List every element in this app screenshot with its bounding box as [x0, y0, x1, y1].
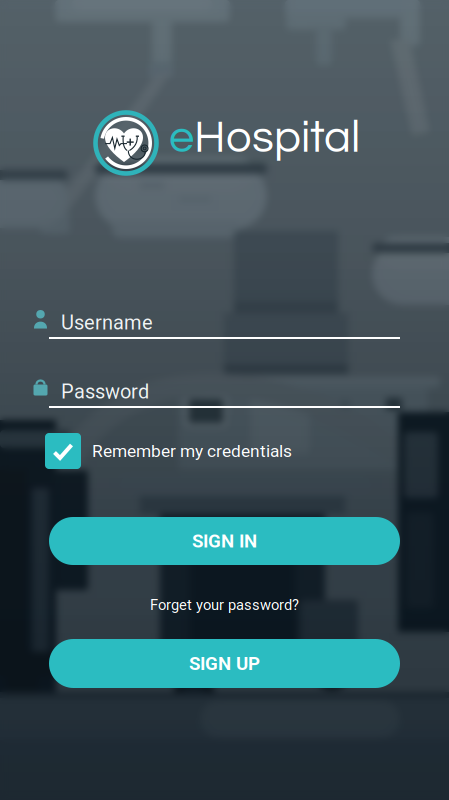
staticText: Password — [61, 380, 149, 403]
staticText: Forget your password? — [150, 596, 299, 614]
staticText: SIGN IN — [192, 530, 257, 552]
button[interactable]: Forget your password? — [49, 592, 400, 618]
button[interactable]: Remember my credentials — [45, 433, 305, 469]
staticText: Remember my credentials — [92, 441, 292, 461]
button[interactable]: SIGN IN — [49, 517, 400, 565]
staticText: Hospital — [194, 115, 360, 161]
staticText: Username — [61, 311, 153, 334]
button[interactable]: SIGN UP — [49, 639, 400, 688]
staticText: e — [169, 115, 194, 161]
staticText: SIGN UP — [189, 653, 260, 674]
